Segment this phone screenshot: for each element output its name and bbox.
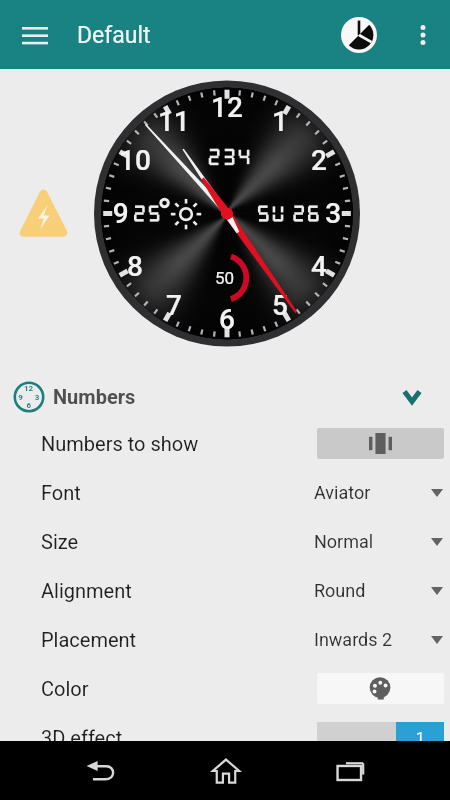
staticText: Color [41, 677, 89, 700]
button[interactable]: Recent apps [288, 741, 413, 800]
button[interactable]: 1 [396, 722, 444, 753]
button[interactable]: Font [0, 468, 450, 517]
button[interactable]: Numbers to show [317, 428, 444, 459]
staticText: 3D effect [41, 726, 123, 749]
button[interactable]: Numbers [0, 374, 450, 419]
button[interactable]: Color [0, 664, 450, 713]
staticText: Round [314, 580, 366, 601]
staticText: Numbers to show [41, 432, 199, 455]
button[interactable]: 3D effect [0, 713, 450, 762]
staticText: Normal [314, 531, 374, 552]
button[interactable]: Home [163, 741, 288, 800]
button[interactable]: Placement [0, 615, 450, 664]
staticText: Inwards 2 [314, 629, 393, 650]
staticText: Font [41, 481, 81, 504]
button[interactable]: More options [400, 12, 446, 58]
button[interactable]: Back [37, 741, 163, 800]
staticText: Size [41, 530, 79, 553]
button[interactable]: Preview watch face [336, 12, 382, 58]
button[interactable]: Open navigation menu [11, 11, 59, 59]
button[interactable]: Alignment [0, 566, 450, 615]
button[interactable] [317, 722, 396, 753]
button[interactable]: Watch face preview [94, 77, 360, 350]
button[interactable]: Choose colour [317, 673, 444, 704]
staticText: Placement [41, 628, 137, 651]
button[interactable]: Numbers to show [0, 419, 450, 468]
button[interactable]: Warning [19, 188, 68, 237]
staticText: Default [77, 22, 151, 49]
staticText: Numbers [53, 385, 136, 408]
staticText: Alignment [41, 579, 132, 602]
staticText: Aviator [314, 482, 371, 503]
button[interactable]: Size [0, 517, 450, 566]
staticText: 1 [416, 729, 425, 747]
